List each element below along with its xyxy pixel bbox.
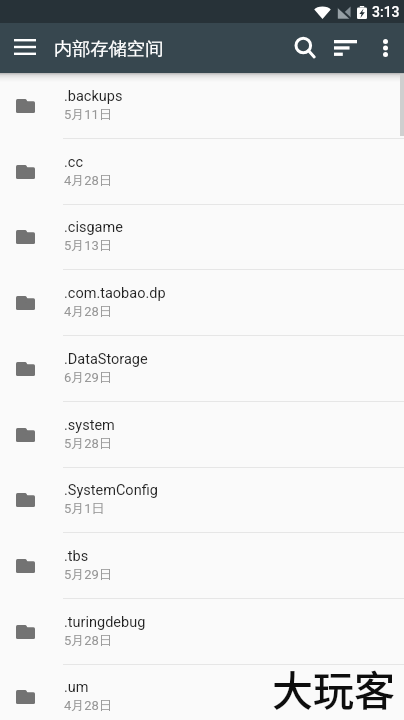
button[interactable]: .system [0, 402, 404, 468]
staticText: 5月1日 [64, 500, 105, 516]
staticText: 5月28日 [64, 435, 112, 451]
staticText: 内部存储空间 [54, 37, 164, 60]
staticText: 大玩客 [272, 658, 395, 717]
staticText: 5月13日 [64, 237, 112, 253]
button[interactable]: .com.taobao.dp [0, 270, 404, 336]
staticText: .turingdebug [64, 614, 146, 631]
button[interactable]: .DataStorage [0, 336, 404, 402]
staticText: .system [64, 417, 115, 434]
button[interactable]: .cc [0, 139, 404, 205]
staticText: 4月28日 [64, 172, 112, 188]
button[interactable]: Navigation menu [0, 25, 50, 71]
staticText: 5月28日 [64, 632, 112, 648]
staticText: 5月29日 [64, 566, 112, 582]
button[interactable]: .turingdebug [0, 599, 404, 665]
button[interactable]: Sort [325, 23, 366, 72]
button[interactable]: Search [282, 23, 326, 72]
button[interactable]: .cisgame [0, 204, 404, 270]
staticText: .DataStorage [64, 351, 148, 368]
staticText: .com.taobao.dp [64, 285, 166, 302]
button[interactable]: More options [366, 23, 404, 72]
staticText: .um [64, 679, 89, 696]
staticText: 4月28日 [64, 303, 112, 319]
staticText: 4月28日 [64, 697, 112, 713]
staticText: 3:13 [372, 4, 400, 20]
staticText: .tbs [64, 548, 89, 565]
staticText: .SystemConfig [64, 482, 158, 499]
button[interactable]: .backups [0, 73, 404, 139]
staticText: 6月29日 [64, 369, 112, 385]
staticText: .backups [64, 88, 123, 105]
button[interactable]: .SystemConfig [0, 467, 404, 533]
staticText: 5月11日 [64, 106, 112, 122]
staticText: .cisgame [64, 219, 123, 236]
staticText: .cc [64, 154, 84, 171]
button[interactable]: .um [0, 664, 404, 720]
button[interactable]: .tbs [0, 533, 404, 599]
